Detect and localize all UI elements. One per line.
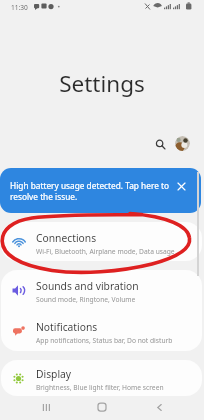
staticText: Notifications bbox=[36, 320, 98, 334]
button[interactable]: Notifications bbox=[1, 310, 202, 351]
button[interactable]: Sounds and vibration bbox=[1, 270, 202, 310]
staticText: Display bbox=[36, 367, 72, 381]
staticText: 11:30 bbox=[11, 3, 28, 12]
staticText: Wi-Fi, Bluetooth, Airplane mode, Data us… bbox=[36, 247, 175, 256]
staticText: Settings bbox=[0, 68, 204, 99]
button[interactable]: Home bbox=[90, 400, 114, 414]
staticText: Sounds and vibration bbox=[36, 279, 139, 293]
button[interactable]: Search bbox=[150, 134, 170, 154]
staticText: Sound mode, Ringtone, Volume bbox=[36, 295, 136, 304]
button[interactable]: Back bbox=[147, 400, 171, 414]
button[interactable]: Connections bbox=[1, 222, 202, 261]
button[interactable]: Recents bbox=[33, 400, 57, 414]
staticText: Brightness, Blue light filter, Home scre… bbox=[36, 383, 164, 392]
staticText: High battery usage detected. Tap here to… bbox=[10, 180, 169, 202]
staticText: Connections bbox=[36, 231, 97, 245]
button[interactable]: Account bbox=[175, 136, 190, 151]
button[interactable]: High battery usage detected. Tap here to… bbox=[0, 168, 201, 213]
staticText: App notifications, Status bar, Do not di… bbox=[36, 336, 173, 345]
button[interactable]: Dismiss bbox=[175, 180, 188, 193]
button[interactable]: Display bbox=[1, 360, 202, 396]
